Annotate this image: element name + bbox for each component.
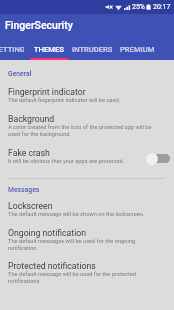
staticText: Fingerprint indicator [8, 87, 86, 97]
staticText: INTRUDERS [72, 45, 113, 54]
button[interactable]: Fingerprint indicator [0, 87, 174, 115]
button[interactable]: SETTINGS [0, 38, 30, 60]
staticText: A color created from the icon of the pro… [8, 124, 156, 138]
button[interactable]: INTRUDERS [68, 38, 117, 60]
button[interactable]: Lockscreen [0, 201, 174, 228]
staticText: The default message will be used for the… [8, 271, 156, 285]
staticText: The default messages will be used for th… [8, 238, 156, 252]
button[interactable]: Fake crash [0, 148, 174, 176]
staticText: Fake crash [8, 148, 50, 158]
staticText: 25% [132, 3, 145, 11]
staticText: Protected notifications [8, 261, 96, 271]
staticText: The default fingerprint indicator will b… [8, 97, 121, 104]
staticText: Background [8, 114, 55, 124]
staticText: General [8, 70, 32, 78]
staticText: Lockscreen [8, 201, 53, 211]
button[interactable]: Background [0, 114, 174, 148]
staticText: THEMES [34, 45, 64, 54]
staticText: The default message will be shown on the… [8, 211, 145, 218]
button[interactable]: Ongoing notification [0, 228, 174, 261]
staticText: 20:17 [153, 3, 171, 11]
staticText: PREMIUM [120, 45, 155, 54]
staticText: Ongoing notification [8, 228, 87, 238]
staticText: FingerSecurity [5, 19, 73, 31]
button[interactable]: Protected notifications [0, 261, 174, 294]
staticText: Messages [8, 186, 40, 194]
staticText: It will be obvious that your apps are pr… [8, 158, 125, 165]
button[interactable]: PREMIUM [117, 38, 158, 60]
button[interactable]: THEMES [30, 38, 68, 60]
staticText: SETTINGS [0, 45, 24, 54]
